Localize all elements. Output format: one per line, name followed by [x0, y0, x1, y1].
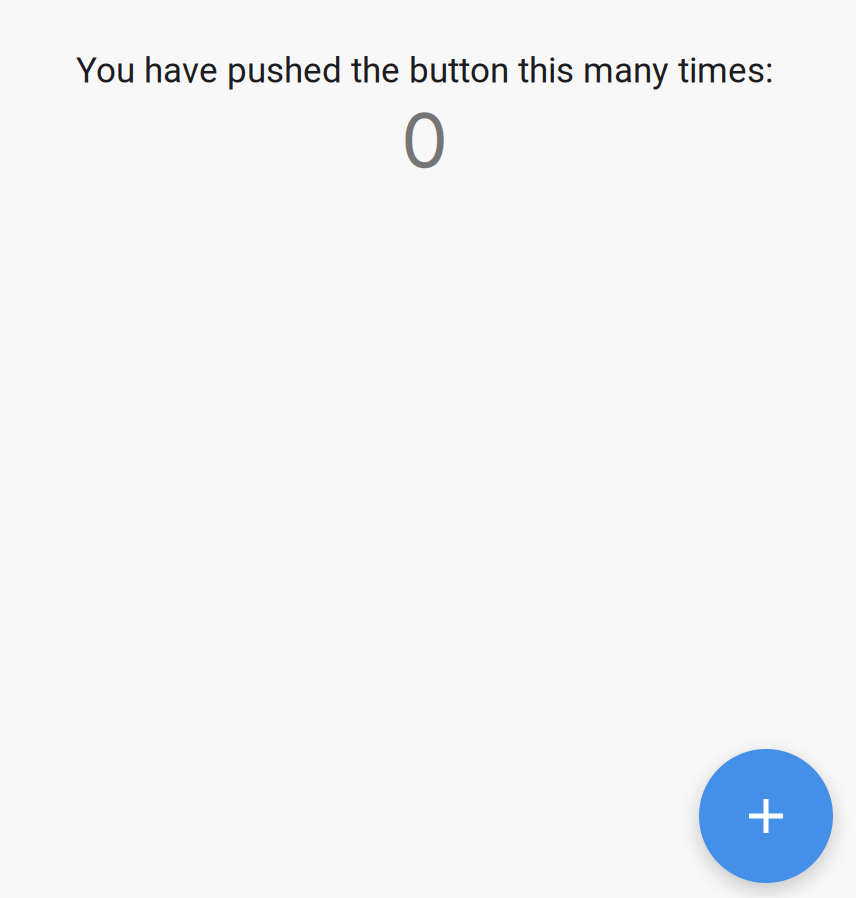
staticText: You have pushed the button this many tim… — [76, 50, 773, 91]
staticText: 0 — [401, 95, 448, 185]
button[interactable]: Increment — [699, 749, 833, 883]
